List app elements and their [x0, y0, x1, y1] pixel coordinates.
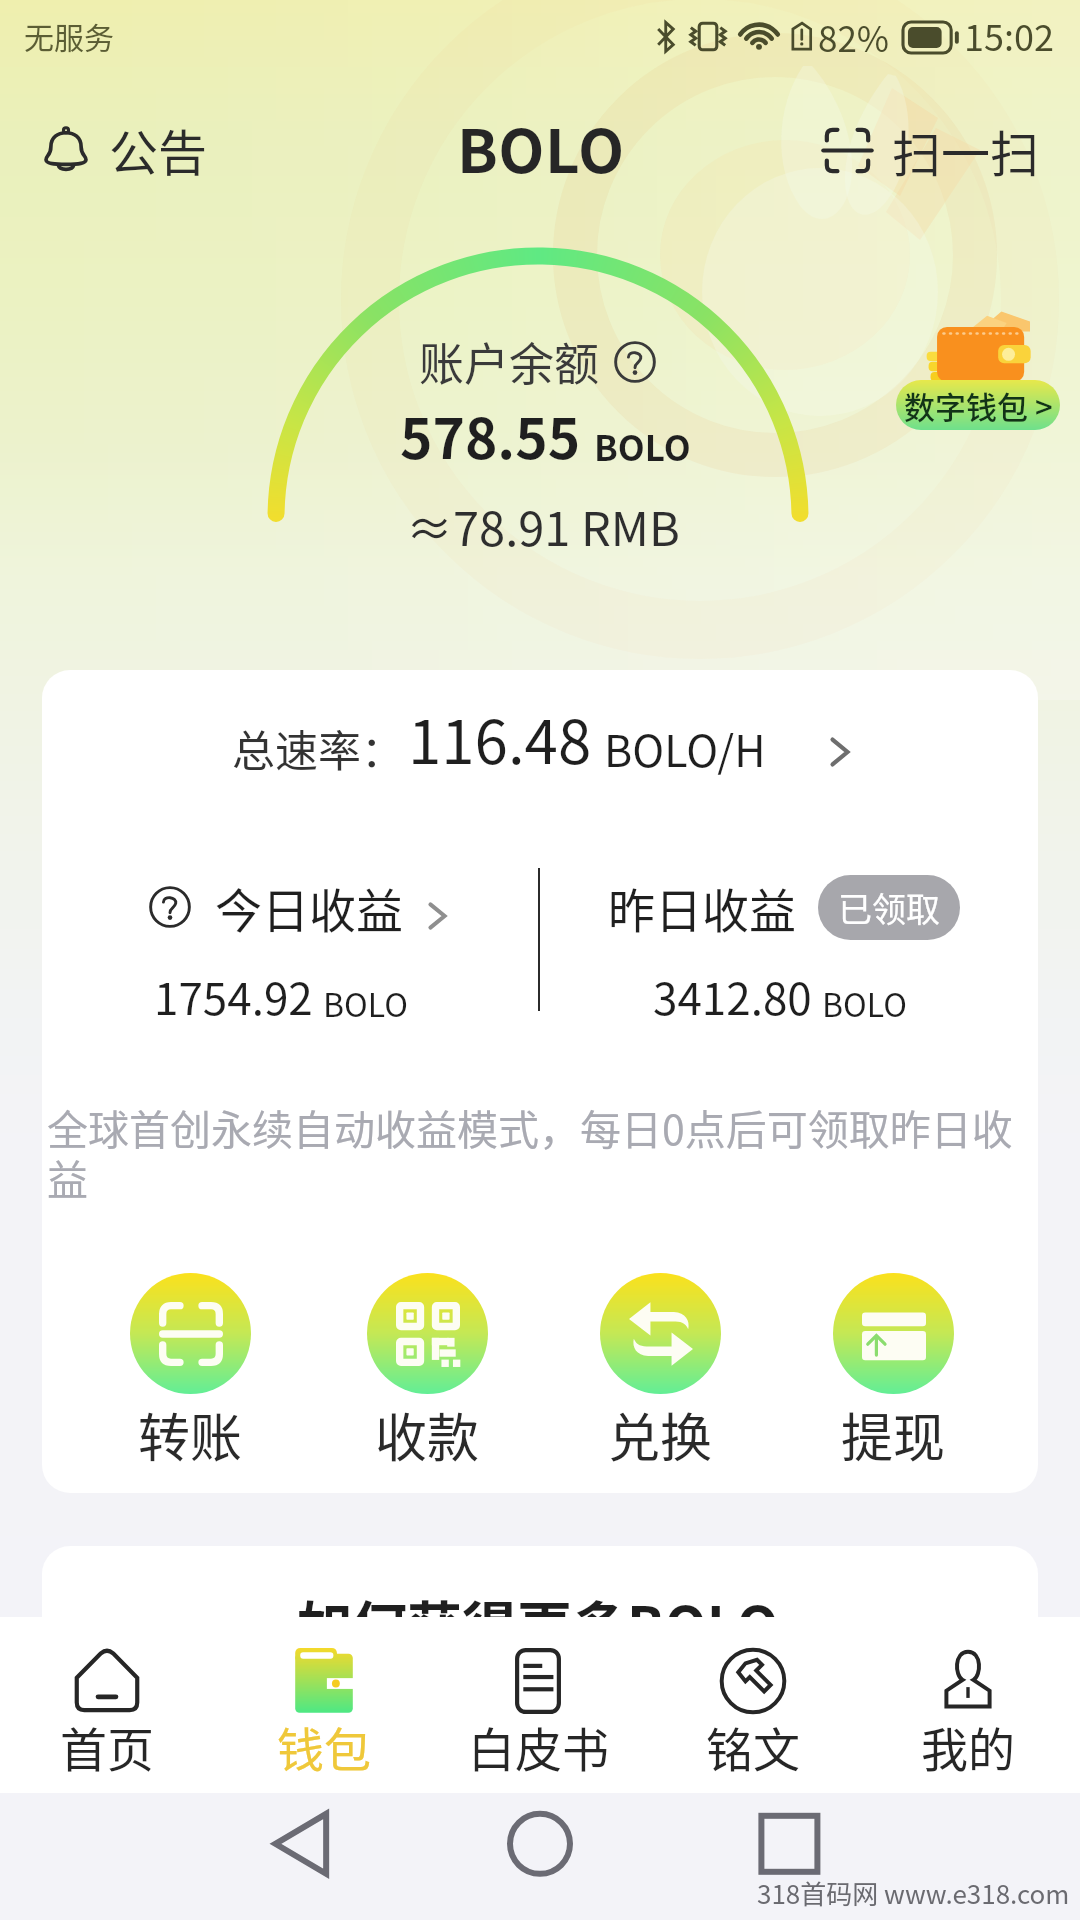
- staticText: 全球首创永续自动收益模式，每日0点后可领取昨日收益: [47, 1097, 1038, 1207]
- staticText: 116.48: [408, 694, 592, 781]
- staticText: 铭文: [706, 1712, 800, 1780]
- staticText: 账户余额: [419, 329, 600, 394]
- staticText: BOLO: [822, 980, 907, 1026]
- staticText: 如何获得更多BOLO: [297, 1583, 779, 1663]
- staticText: 转账: [138, 1397, 243, 1472]
- staticText: BOLO: [594, 420, 691, 471]
- button[interactable]: 白皮书: [453, 1645, 623, 1785]
- staticText: 无服务: [24, 14, 114, 57]
- button[interactable]: 收款: [366, 1273, 488, 1472]
- staticText: 白皮书: [468, 1712, 609, 1780]
- button[interactable]: 铭文: [668, 1645, 838, 1785]
- staticText: 数字钱包 >: [904, 383, 1053, 428]
- button[interactable]: 兑换: [599, 1273, 721, 1472]
- staticText: 提现: [841, 1397, 946, 1472]
- button[interactable]: 账户余额: [419, 329, 657, 394]
- staticText: ≈78.91 RMB: [406, 491, 680, 559]
- button[interactable]: 钱包: [239, 1645, 409, 1785]
- staticText: 首页: [60, 1712, 154, 1780]
- button[interactable]: 我的: [883, 1645, 1053, 1785]
- staticText: 扫一扫: [892, 115, 1040, 186]
- button[interactable]: 已领取: [818, 875, 960, 940]
- staticText: 钱包: [277, 1712, 371, 1780]
- staticText: 今日收益: [215, 873, 403, 941]
- staticText: BOLO: [457, 103, 625, 190]
- button[interactable]: 今日收益: [148, 873, 403, 941]
- staticText: BOLO: [323, 980, 408, 1026]
- staticText: 收款: [375, 1397, 480, 1472]
- staticText: 昨日收益: [608, 873, 796, 941]
- staticText: 578.55: [400, 395, 581, 475]
- staticText: 兑换: [608, 1397, 713, 1472]
- staticText: 318首码网 www.e318.com: [757, 1874, 1070, 1912]
- button[interactable]: 公告: [33, 108, 214, 191]
- staticText: 1754.92: [154, 964, 313, 1028]
- staticText: 公告: [109, 114, 208, 185]
- button[interactable]: 总速率：: [226, 688, 772, 787]
- button[interactable]: 提现: [832, 1273, 954, 1472]
- staticText: 我的: [921, 1712, 1015, 1780]
- staticText: 已领取: [838, 883, 940, 932]
- staticText: 3412.80: [653, 964, 812, 1028]
- staticText: 15:02: [964, 9, 1054, 61]
- staticText: BOLO/H: [604, 717, 766, 779]
- button[interactable]: 数字钱包: [896, 310, 1062, 430]
- staticText: 总速率：: [232, 717, 404, 779]
- button[interactable]: 转账: [129, 1273, 251, 1472]
- staticText: 82%: [818, 11, 890, 62]
- button[interactable]: 首页: [22, 1645, 192, 1785]
- button[interactable]: 扫一扫: [815, 109, 1046, 192]
